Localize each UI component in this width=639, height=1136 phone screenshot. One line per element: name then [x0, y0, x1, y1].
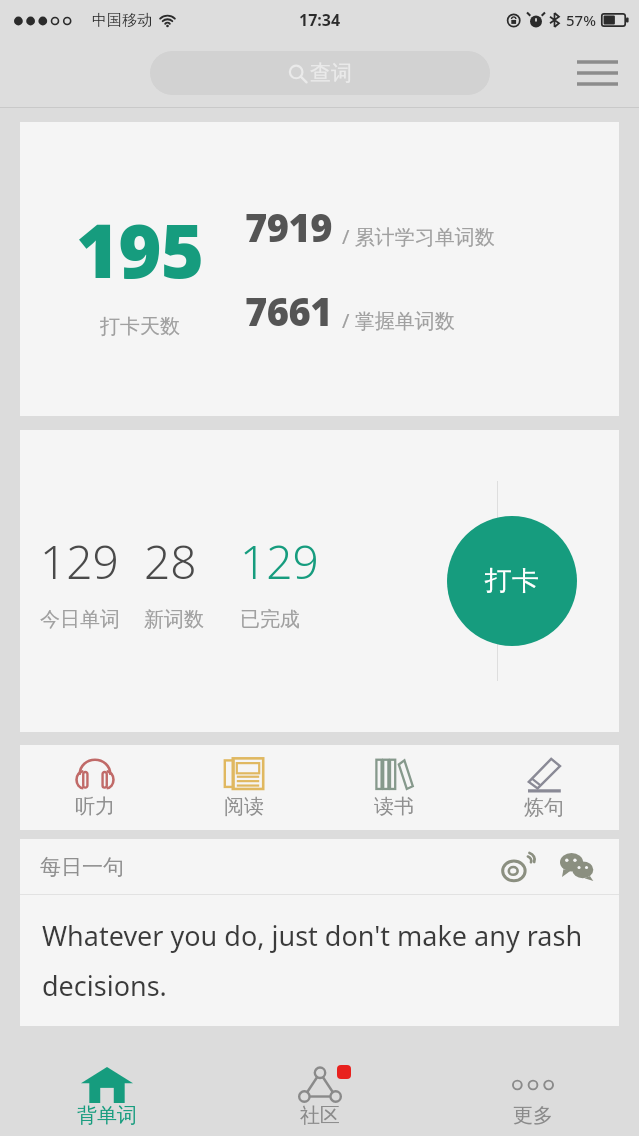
staticText: Whatever you do, just don't make any ras… [42, 917, 601, 1004]
staticText: 195 [76, 199, 204, 300]
staticText: 已完成 [240, 607, 300, 632]
staticText: 查词 [310, 60, 352, 86]
button[interactable]: 炼句 [469, 745, 619, 830]
staticText: 新词数 [144, 607, 204, 632]
button[interactable]: 听力 [20, 745, 169, 830]
staticText: 阅读 [224, 794, 264, 819]
button[interactable]: Weibo [497, 845, 541, 889]
staticText: 今日单词 [40, 607, 120, 632]
button[interactable]: Menu [569, 45, 625, 101]
staticText: 28 [144, 530, 197, 593]
button[interactable]: 195 [20, 122, 619, 416]
staticText: 7919 [245, 201, 333, 253]
button[interactable]: 社区 [213, 1058, 426, 1136]
staticText: 社区 [300, 1103, 340, 1128]
staticText: 中国移动 [92, 11, 152, 30]
button[interactable]: 背单词 [0, 1058, 213, 1136]
staticText: 打卡天数 [100, 314, 180, 339]
staticText: 听力 [75, 794, 115, 819]
staticText: 129 [240, 530, 319, 593]
button[interactable]: 打卡 [447, 516, 577, 646]
staticText: 背单词 [77, 1103, 137, 1128]
button[interactable]: 读书 [319, 745, 469, 830]
staticText: / 累计学习单词数 [342, 223, 495, 250]
staticText: 更多 [513, 1103, 553, 1128]
staticText: 57% [566, 10, 596, 30]
staticText: 炼句 [524, 795, 564, 820]
button[interactable]: WeChat [555, 845, 599, 889]
button[interactable]: 阅读 [169, 745, 319, 830]
staticText: / 掌握单词数 [342, 307, 455, 334]
staticText: 129 [40, 530, 119, 593]
staticText: 17:34 [299, 9, 341, 31]
staticText: 打卡 [485, 564, 539, 598]
staticText: 每日一句 [40, 854, 124, 880]
button[interactable]: 更多 [426, 1058, 639, 1136]
staticText: 7661 [245, 285, 333, 337]
staticText: 读书 [374, 794, 414, 819]
button[interactable]: 查词 [150, 51, 490, 95]
